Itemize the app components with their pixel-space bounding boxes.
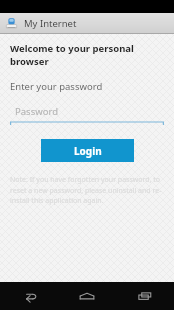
staticText: Password	[15, 105, 58, 118]
button[interactable]: Recent apps	[116, 282, 174, 310]
staticText: My Internet	[24, 17, 77, 30]
staticText: Note: If you have forgotten your passwor…	[10, 175, 164, 205]
staticText: Welcome to your personal browser	[10, 42, 174, 68]
staticText: Login	[74, 144, 102, 158]
button[interactable]: Home	[58, 282, 116, 310]
button[interactable]: Login	[41, 139, 134, 162]
button[interactable]: Back	[0, 282, 58, 310]
button[interactable]: Password	[10, 105, 164, 125]
staticText: Enter your password	[10, 80, 103, 93]
